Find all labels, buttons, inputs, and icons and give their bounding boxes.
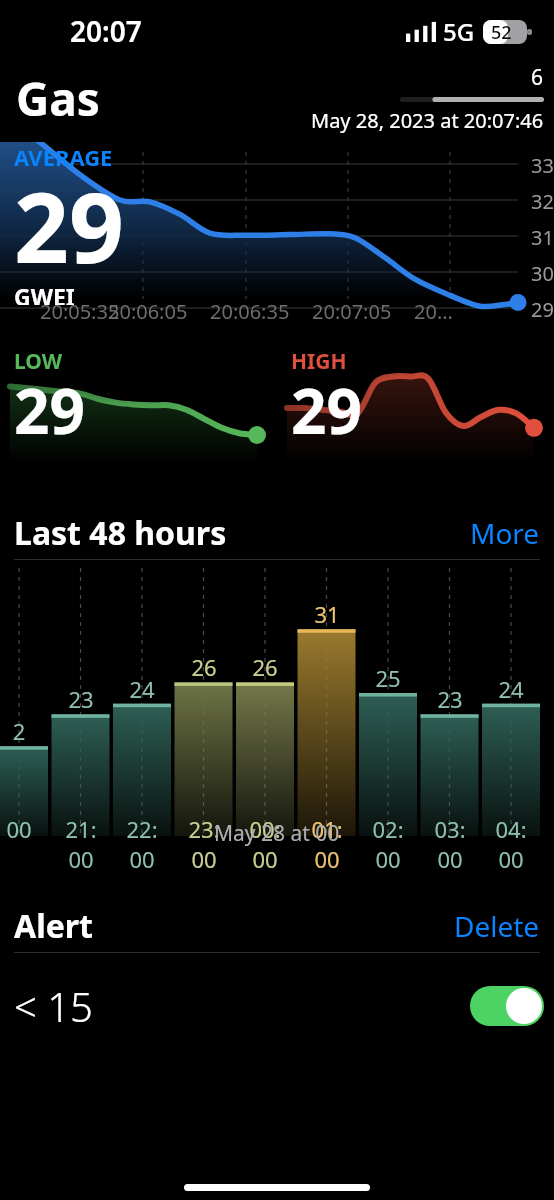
- staticText: 23: [434, 684, 466, 714]
- staticText: 20:07: [70, 12, 142, 50]
- staticText: 24: [495, 674, 527, 704]
- button[interactable]: Delete: [440, 901, 554, 951]
- staticText: 30: [531, 260, 554, 287]
- staticText: 20:05:35: [40, 298, 120, 325]
- button[interactable]: < 15: [0, 953, 554, 1058]
- button[interactable]: Alert enabled toggle: [470, 986, 544, 1026]
- staticText: 29: [291, 368, 362, 452]
- staticText: Last 48 hours: [14, 511, 227, 555]
- staticText: 31: [531, 224, 554, 251]
- staticText: Gas: [16, 67, 100, 130]
- staticText: 00:00: [249, 814, 281, 874]
- staticText: 02:00: [372, 814, 404, 874]
- staticText: 32: [531, 188, 554, 215]
- staticText: 04:00: [495, 814, 527, 874]
- staticText: 25: [372, 663, 404, 693]
- staticText: AVERAGE: [14, 142, 113, 172]
- staticText: 21:00: [65, 814, 97, 874]
- staticText: < 15: [14, 979, 93, 1033]
- staticText: 20:06:35: [210, 298, 290, 325]
- staticText: HIGH: [291, 347, 347, 376]
- staticText: 01:00: [311, 814, 343, 874]
- button[interactable]: More: [456, 508, 554, 558]
- staticText: Delete: [454, 907, 540, 945]
- staticText: 26: [249, 652, 281, 682]
- staticText: 29: [14, 368, 85, 452]
- staticText: 5G: [443, 15, 475, 48]
- staticText: 03:00: [434, 814, 466, 874]
- staticText: 23: [65, 684, 97, 714]
- staticText: 24: [126, 674, 158, 704]
- staticText: 29: [531, 296, 554, 323]
- staticText: 2: [3, 716, 35, 746]
- staticText: More: [470, 514, 540, 552]
- staticText: 29: [14, 160, 124, 291]
- staticText: 52: [491, 20, 512, 44]
- staticText: May 28 at 00: [214, 819, 340, 848]
- staticText: 22:00: [126, 814, 158, 874]
- staticText: 23:00: [188, 814, 220, 874]
- staticText: 20:07:05: [312, 298, 392, 325]
- staticText: 33: [531, 152, 554, 179]
- staticText: 20:06:05: [108, 298, 188, 325]
- staticText: 00: [3, 814, 35, 844]
- staticText: 20...: [414, 298, 453, 325]
- staticText: Alert: [14, 904, 93, 948]
- staticText: 6: [531, 63, 544, 92]
- staticText: GWEI: [14, 281, 75, 305]
- staticText: 31: [311, 599, 343, 629]
- staticText: LOW: [14, 347, 63, 376]
- staticText: 26: [188, 652, 220, 682]
- staticText: May 28, 2023 at 20:07:46: [311, 107, 544, 134]
